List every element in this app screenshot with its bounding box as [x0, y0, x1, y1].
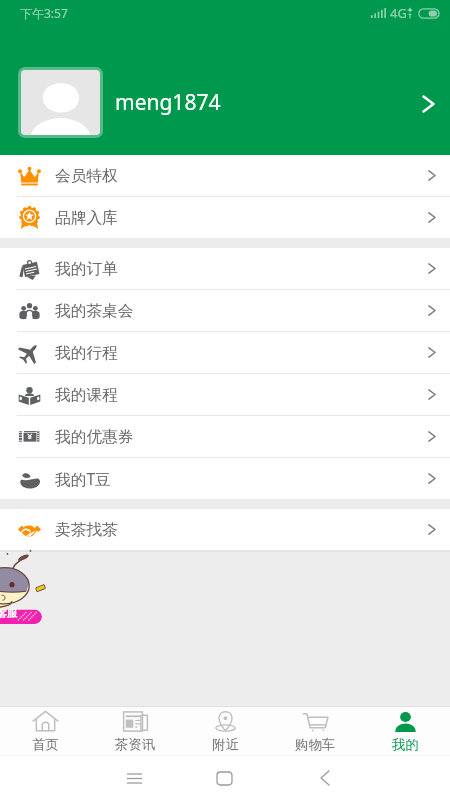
staticText: 4G	[390, 4, 407, 22]
staticText: 我的茶桌会	[55, 301, 134, 321]
button[interactable]: 我的T豆	[0, 458, 450, 499]
staticText: 下午3:57	[20, 5, 68, 21]
button[interactable]: Recent apps	[116, 760, 152, 796]
button[interactable]: 我的优惠券	[0, 416, 450, 457]
button[interactable]: 茶资讯	[90, 707, 180, 755]
button[interactable]: 我的茶桌会	[0, 290, 450, 331]
staticText: 我的	[392, 736, 419, 753]
staticText: 我的T豆	[55, 468, 111, 489]
staticText: 我的订单	[55, 259, 118, 279]
button[interactable]: Back	[307, 760, 343, 796]
staticText: 品牌入库	[55, 208, 118, 228]
button[interactable]: 我的	[360, 707, 450, 755]
staticText: 茶资讯	[115, 736, 156, 753]
staticText: 客服	[0, 607, 17, 620]
staticText: meng1874	[115, 88, 221, 117]
button[interactable]: 我的行程	[0, 332, 450, 373]
staticText: 我的优惠券	[55, 427, 134, 447]
button[interactable]: 卖茶找茶	[0, 509, 450, 550]
staticText: 我的行程	[55, 343, 118, 363]
button[interactable]: 附近	[180, 707, 270, 755]
staticText: 会员特权	[55, 166, 118, 186]
button[interactable]: 首页	[0, 707, 90, 755]
button[interactable]: 我的课程	[0, 374, 450, 415]
staticText: 购物车	[295, 736, 336, 753]
button[interactable]: 我的订单	[0, 248, 450, 289]
staticText: 我的课程	[55, 385, 118, 405]
button[interactable]: meng1874	[0, 26, 450, 155]
button[interactable]: 品牌入库	[0, 197, 450, 238]
staticText: 附近	[212, 736, 239, 753]
button[interactable]: 购物车	[270, 707, 360, 755]
button[interactable]: Home	[206, 760, 242, 796]
staticText: 卖茶找茶	[55, 520, 118, 540]
staticText: 首页	[32, 736, 59, 753]
button[interactable]: 会员特权	[0, 155, 450, 196]
